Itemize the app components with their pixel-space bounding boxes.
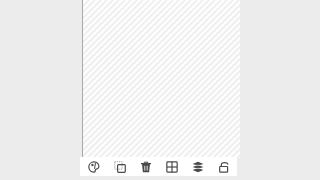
button[interactable]: Duplicate bbox=[107, 157, 133, 176]
button[interactable]: Delete bbox=[133, 157, 159, 176]
button[interactable]: Unlock bbox=[211, 157, 237, 176]
button[interactable]: Grid bbox=[159, 157, 185, 176]
button[interactable]: Color palette bbox=[80, 157, 107, 176]
button[interactable]: Layers bbox=[185, 157, 211, 176]
